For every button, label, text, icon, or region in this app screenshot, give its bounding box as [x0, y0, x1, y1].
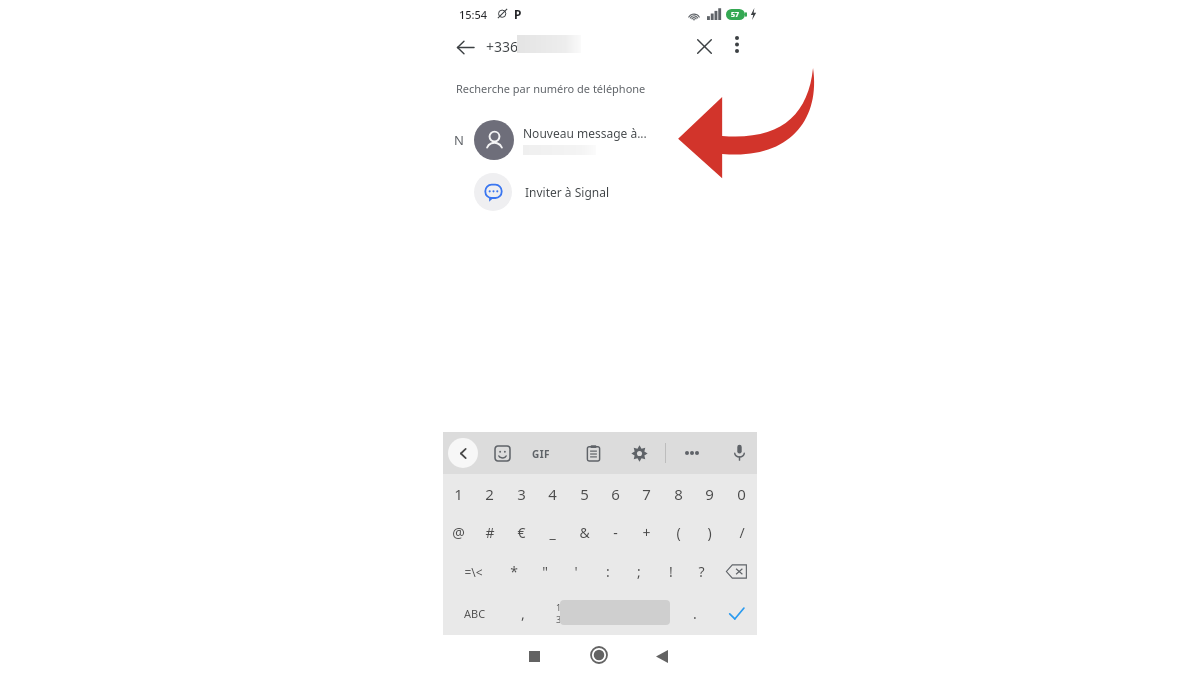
staticText: 7	[642, 484, 651, 504]
staticText: &	[579, 523, 590, 542]
button[interactable]: =\<	[451, 552, 495, 591]
button[interactable]: 1	[443, 474, 474, 513]
button[interactable]: .	[675, 591, 715, 635]
button[interactable]: Back	[448, 30, 482, 64]
button[interactable]: GIF	[532, 447, 550, 461]
button[interactable]: 3	[506, 474, 537, 513]
button[interactable]: 2	[474, 474, 505, 513]
staticText: -	[613, 523, 618, 542]
button[interactable]: "	[529, 552, 560, 591]
staticText: 1	[454, 484, 463, 504]
button[interactable]: Stickers	[491, 442, 513, 464]
staticText: P	[514, 6, 522, 22]
button[interactable]: Close keyboard toolbar	[448, 438, 478, 468]
staticText: (	[676, 523, 681, 542]
button[interactable]: -	[600, 513, 631, 552]
staticText: /	[739, 523, 745, 542]
button[interactable]: 7	[631, 474, 662, 513]
staticText: 3 4	[556, 613, 569, 625]
button[interactable]: ,	[505, 591, 541, 635]
button[interactable]: ABC	[449, 591, 501, 635]
staticText: @	[452, 523, 465, 542]
button[interactable]: 8	[663, 474, 694, 513]
button[interactable]: Backspace	[715, 552, 757, 591]
staticText: +336	[486, 37, 519, 56]
button[interactable]: Home	[583, 639, 615, 671]
button[interactable]: (	[663, 513, 694, 552]
staticText: Recherche par numéro de téléphone	[456, 81, 646, 96]
button[interactable]: ;	[623, 552, 654, 591]
staticText: 5	[580, 484, 589, 504]
button[interactable]: _	[537, 513, 568, 552]
button[interactable]: ?	[686, 552, 717, 591]
staticText: :	[606, 562, 610, 581]
button[interactable]: Numbers	[543, 591, 581, 635]
button[interactable]: Enter	[715, 591, 757, 635]
button[interactable]: Settings	[628, 442, 650, 464]
staticText: ,	[521, 604, 525, 623]
button[interactable]: '	[560, 552, 591, 591]
button[interactable]: 4	[537, 474, 568, 513]
staticText: 2	[485, 484, 494, 504]
staticText: 0	[737, 484, 746, 504]
staticText: .	[693, 604, 697, 623]
staticText: *	[510, 562, 518, 581]
button[interactable]: Clipboard	[582, 442, 604, 464]
staticText: _	[549, 523, 556, 542]
staticText: 57	[731, 10, 740, 20]
button[interactable]: )	[694, 513, 725, 552]
staticText: ?	[698, 562, 705, 581]
staticText: Nouveau message à...	[523, 125, 647, 141]
staticText: 9	[705, 484, 714, 504]
button[interactable]: Clear	[687, 29, 721, 63]
staticText: +	[642, 523, 651, 542]
staticText: Inviter à Signal	[525, 184, 610, 200]
button[interactable]: Back	[646, 640, 678, 672]
button[interactable]: &	[569, 513, 600, 552]
staticText: 8	[674, 484, 683, 504]
button[interactable]: Inviter à Signal	[474, 170, 674, 213]
staticText: 4	[548, 484, 557, 504]
button[interactable]: €	[506, 513, 537, 552]
staticText: €	[517, 523, 526, 542]
button[interactable]: Voice input	[728, 441, 750, 463]
staticText: !	[669, 562, 673, 581]
staticText: =\<	[464, 564, 483, 580]
staticText: 6	[611, 484, 620, 504]
button[interactable]: Recents	[518, 640, 550, 672]
button[interactable]: 0	[726, 474, 757, 513]
staticText: ABC	[464, 606, 486, 621]
button[interactable]: *	[498, 552, 529, 591]
button[interactable]: 5	[569, 474, 600, 513]
button[interactable]: !	[655, 552, 686, 591]
button[interactable]: @	[443, 513, 474, 552]
button[interactable]: More options	[722, 29, 752, 59]
button[interactable]: 9	[694, 474, 725, 513]
button[interactable]: More keyboard options	[679, 440, 705, 466]
staticText: 15:54	[459, 7, 488, 22]
button[interactable]: #	[474, 513, 505, 552]
staticText: 1 2	[556, 601, 569, 613]
button[interactable]: N	[443, 112, 673, 168]
staticText: 3	[517, 484, 526, 504]
staticText: ;	[637, 562, 641, 581]
staticText: N	[454, 131, 464, 149]
button[interactable]: :	[592, 552, 623, 591]
button[interactable]: 6	[600, 474, 631, 513]
button[interactable]: /	[726, 513, 757, 552]
staticText: '	[574, 562, 578, 581]
button[interactable]: +	[631, 513, 662, 552]
staticText: "	[542, 562, 548, 581]
staticText: #	[485, 523, 495, 542]
staticText: )	[707, 523, 712, 542]
